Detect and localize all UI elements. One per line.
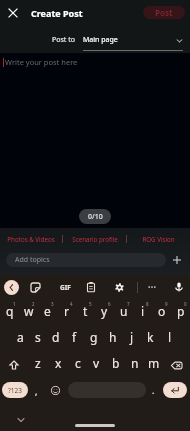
staticText: Main page <box>83 35 176 45</box>
staticText: f <box>72 329 77 345</box>
button[interactable]: 0/10 <box>79 209 111 224</box>
button[interactable]: v <box>87 351 106 377</box>
button[interactable]: j <box>122 325 141 351</box>
button[interactable]: n <box>125 351 144 377</box>
button[interactable]: u <box>114 299 133 325</box>
button[interactable]: l <box>160 325 179 351</box>
button[interactable]: GIF <box>57 278 73 296</box>
button[interactable]: c <box>68 351 87 377</box>
staticText: 2 <box>32 301 35 307</box>
button[interactable]: Backspace <box>163 351 190 377</box>
button[interactable]: w <box>19 299 38 325</box>
button[interactable]: e <box>38 299 57 325</box>
staticText: p <box>177 303 185 319</box>
button[interactable]: Scenario profile <box>63 232 126 246</box>
staticText: 0/10 <box>88 212 103 222</box>
button[interactable]: Clipboard <box>82 278 100 296</box>
staticText: r <box>64 303 69 319</box>
staticText: b <box>112 355 120 371</box>
staticText: a <box>17 329 24 345</box>
staticText: 5 <box>89 301 92 307</box>
staticText: d <box>52 329 60 345</box>
staticText: Create Post <box>31 7 83 19</box>
button[interactable]: Voice input <box>170 278 188 296</box>
button[interactable]: Shift <box>0 351 28 377</box>
button[interactable]: p <box>171 299 190 325</box>
button[interactable]: Hide keyboard <box>14 413 27 426</box>
staticText: y <box>101 303 108 319</box>
staticText: ROG Vision <box>142 235 175 243</box>
staticText: 1 <box>13 301 16 307</box>
button[interactable]: m <box>144 351 163 377</box>
staticText: z <box>35 355 41 371</box>
staticText: s <box>35 329 41 345</box>
button[interactable]: ROG Vision <box>127 232 190 246</box>
button[interactable]: Add topics <box>6 253 166 267</box>
button[interactable]: a <box>11 325 29 351</box>
staticText: . <box>152 384 155 396</box>
staticText: Write your post here <box>5 57 78 67</box>
staticText: x <box>55 355 62 371</box>
button[interactable]: t <box>76 299 95 325</box>
button[interactable]: o <box>152 299 171 325</box>
staticText: e <box>44 303 51 319</box>
staticText: 9 <box>165 301 168 307</box>
button[interactable]: Space <box>68 382 146 398</box>
staticText: , <box>35 385 38 397</box>
button[interactable]: z <box>28 351 48 377</box>
button[interactable]: i <box>133 299 152 325</box>
button[interactable]: Photos & Videos <box>0 232 62 246</box>
button[interactable]: f <box>65 325 84 351</box>
button[interactable]: k <box>141 325 160 351</box>
staticText: Post <box>155 7 173 18</box>
staticText: 4 <box>70 301 73 307</box>
button[interactable]: Main page <box>83 35 183 45</box>
button[interactable]: Emoji <box>48 383 62 397</box>
staticText: 3 <box>51 301 54 307</box>
button[interactable]: Add topic <box>168 251 186 269</box>
button[interactable]: Stickers <box>26 278 44 296</box>
button[interactable]: b <box>106 351 125 377</box>
button[interactable]: More options <box>143 278 161 296</box>
button[interactable]: r <box>57 299 76 325</box>
staticText: Photos & Videos <box>7 235 55 243</box>
button[interactable]: Post <box>143 6 185 19</box>
staticText: m <box>148 355 160 371</box>
staticText: ?123 <box>8 386 22 395</box>
staticText: 8 <box>146 301 149 307</box>
button[interactable]: d <box>47 325 65 351</box>
button[interactable]: Settings <box>110 278 128 296</box>
staticText: v <box>93 355 100 371</box>
button[interactable]: , <box>30 384 43 397</box>
button[interactable]: Enter <box>163 382 187 398</box>
staticText: n <box>131 355 139 371</box>
staticText: 0 <box>184 301 187 307</box>
staticText: k <box>147 329 154 345</box>
button[interactable]: s <box>29 325 47 351</box>
staticText: c <box>75 355 81 371</box>
staticText: h <box>109 329 117 345</box>
staticText: Add topics <box>15 255 50 265</box>
staticText: Scenario profile <box>72 235 118 243</box>
button[interactable]: Close <box>4 4 21 21</box>
staticText: o <box>158 303 166 319</box>
button[interactable]: h <box>103 325 122 351</box>
button[interactable]: q <box>0 299 19 325</box>
staticText: j <box>130 329 134 345</box>
button[interactable]: . <box>147 384 159 396</box>
staticText: GIF <box>60 283 71 292</box>
staticText: u <box>120 303 128 319</box>
button[interactable]: g <box>84 325 103 351</box>
staticText: 7 <box>127 301 130 307</box>
staticText: 6 <box>108 301 111 307</box>
button[interactable]: ?123 <box>2 382 28 398</box>
staticText: i <box>141 303 145 319</box>
staticText: q <box>6 303 14 319</box>
button[interactable]: x <box>48 351 68 377</box>
button[interactable]: Back <box>2 278 20 296</box>
button[interactable]: y <box>95 299 114 325</box>
staticText: t <box>83 303 88 319</box>
staticText: Post to <box>52 35 75 45</box>
staticText: l <box>168 329 172 345</box>
staticText: g <box>90 329 98 345</box>
